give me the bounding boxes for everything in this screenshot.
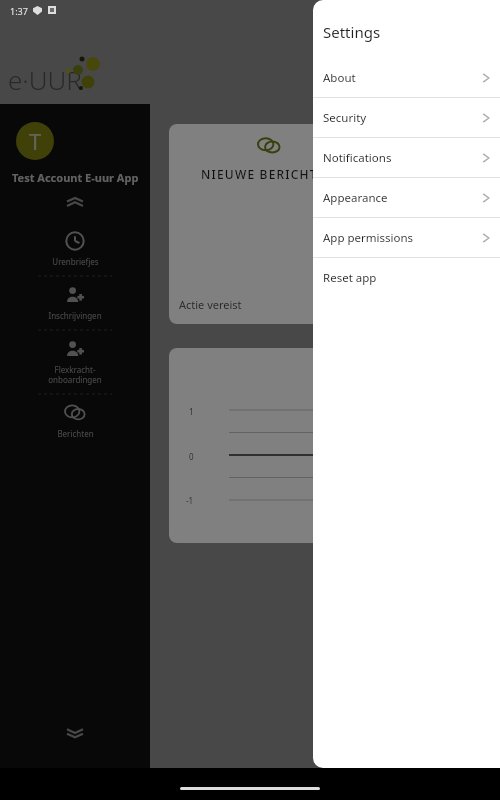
button[interactable]: Berichten bbox=[0, 397, 150, 445]
button[interactable]: Security bbox=[313, 98, 500, 137]
staticText: 0 bbox=[189, 451, 194, 462]
staticText: Test Account E-uur App bbox=[12, 170, 139, 185]
button[interactable]: Notifications bbox=[313, 138, 500, 177]
staticText: Berichten bbox=[57, 428, 94, 439]
staticText: About bbox=[323, 70, 356, 86]
button[interactable]: Urenbriefjes bbox=[0, 225, 150, 273]
staticText: App permissions bbox=[323, 230, 414, 246]
staticText: Notifications bbox=[323, 150, 392, 166]
button[interactable]: Inschrijvingen bbox=[0, 279, 150, 327]
staticText: Actie vereist bbox=[179, 297, 242, 312]
staticText: Flexkracht- onboardingen bbox=[48, 364, 102, 385]
staticText: -1 bbox=[186, 495, 194, 506]
staticText: Inschrijvingen bbox=[48, 310, 102, 321]
button[interactable]: NIEUWE BERICHTEN bbox=[169, 124, 369, 324]
button[interactable]: App permissions bbox=[313, 218, 500, 257]
staticText: Security bbox=[323, 110, 367, 126]
button[interactable]: Flexkracht- onboardingen bbox=[0, 333, 150, 391]
staticText: Appearance bbox=[323, 190, 388, 206]
staticText: Reset app bbox=[323, 270, 377, 286]
staticText: Settings bbox=[323, 22, 381, 42]
button[interactable]: Reset app bbox=[313, 258, 500, 297]
staticText: Urenbriefjes bbox=[52, 256, 99, 267]
staticText: e·UUR bbox=[8, 62, 82, 97]
button[interactable]: UREN bbox=[169, 348, 369, 543]
staticText: NIEUWE BERICHTEN bbox=[201, 166, 337, 182]
staticText: 1:37 bbox=[10, 5, 28, 17]
button[interactable]: Appearance bbox=[313, 178, 500, 217]
staticText: T bbox=[29, 126, 42, 156]
staticText: 1 bbox=[189, 406, 194, 417]
button[interactable]: About bbox=[313, 58, 500, 97]
